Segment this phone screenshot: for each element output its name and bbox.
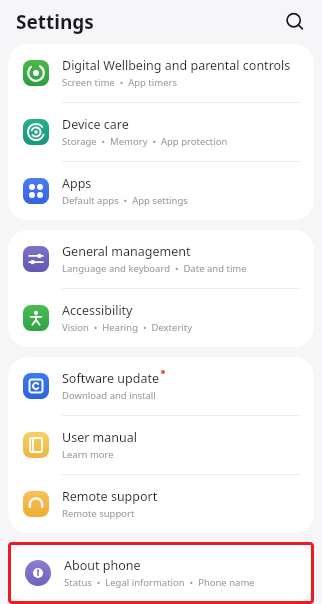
staticText: Status • Legal information • Phone name bbox=[64, 576, 255, 589]
staticText: About phone bbox=[64, 557, 141, 574]
staticText: Software update bbox=[62, 370, 159, 387]
staticText: Default apps • App settings bbox=[62, 194, 188, 207]
button[interactable]: Device care bbox=[8, 103, 314, 161]
button[interactable]: About phone bbox=[10, 544, 312, 602]
staticText: Storage • Memory • App protection bbox=[62, 135, 228, 148]
staticText: Device care bbox=[62, 116, 129, 133]
staticText: Remote support bbox=[62, 488, 158, 505]
staticText: Language and keyboard • Date and time bbox=[62, 262, 247, 275]
staticText: User manual bbox=[62, 429, 137, 446]
staticText: Remote support bbox=[62, 507, 135, 520]
button[interactable]: Software update bbox=[8, 357, 314, 415]
button[interactable]: Digital Wellbeing and parental controls bbox=[8, 44, 314, 102]
button[interactable]: User manual bbox=[8, 416, 314, 474]
staticText: Learn more bbox=[62, 448, 114, 461]
staticText: Digital Wellbeing and parental controls bbox=[62, 57, 291, 74]
staticText: General management bbox=[62, 243, 191, 260]
button[interactable]: Apps bbox=[8, 162, 314, 220]
staticText: Screen time • App timers bbox=[62, 76, 177, 89]
button[interactable]: Remote support bbox=[8, 475, 314, 533]
staticText: Vision • Hearing • Dexterity bbox=[62, 321, 193, 334]
staticText: Accessibility bbox=[62, 302, 133, 319]
staticText: Download and install bbox=[62, 389, 156, 402]
button[interactable]: General management bbox=[8, 230, 314, 288]
staticText: Apps bbox=[62, 175, 92, 192]
staticText: Settings bbox=[16, 9, 278, 35]
button[interactable]: Search bbox=[278, 5, 312, 39]
button[interactable]: Accessibility bbox=[8, 289, 314, 347]
